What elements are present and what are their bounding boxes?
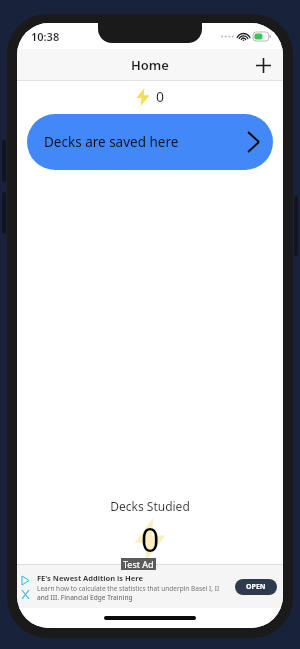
staticText: FE's Newest Addition is Here	[37, 573, 143, 583]
staticText: 0	[141, 518, 160, 562]
staticText: Decks Studied	[110, 498, 190, 514]
staticText: Home	[131, 56, 169, 74]
staticText: Learn how to calculate the statistics th…	[37, 584, 220, 593]
button[interactable]: Decks are saved here	[27, 114, 273, 170]
staticText: OPEN	[246, 582, 266, 592]
staticText: Test Ad	[123, 558, 154, 570]
staticText: and III. Financial Edge Training	[37, 593, 133, 602]
staticText: 10:38	[31, 29, 60, 44]
button[interactable]: OPEN	[235, 579, 277, 595]
staticText: 0	[156, 87, 165, 106]
staticText: Decks are saved here	[44, 133, 179, 151]
button[interactable]: Add deck	[249, 51, 277, 79]
